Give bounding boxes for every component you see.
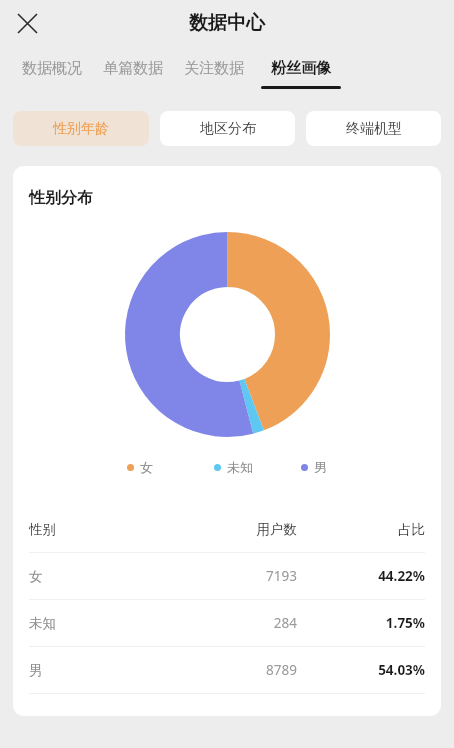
staticText: 粉丝画像 [271, 59, 331, 78]
button[interactable]: 地区分布 [160, 111, 295, 146]
staticText: 关注数据 [184, 59, 244, 78]
staticText: 性别分布 [29, 188, 93, 208]
button[interactable]: 终端机型 [306, 111, 441, 146]
button[interactable]: Close [8, 4, 46, 42]
button[interactable]: 粉丝画像 [261, 46, 341, 89]
staticText: 44.22% [315, 567, 425, 585]
staticText: 男 [314, 459, 327, 475]
staticText: 未知 [29, 615, 163, 632]
staticText: 7193 [163, 567, 297, 585]
staticText: 1.75% [315, 614, 425, 632]
staticText: 54.03% [315, 661, 425, 679]
staticText: 性别年龄 [53, 120, 109, 138]
staticText: 数据概况 [22, 59, 82, 78]
button[interactable]: 数据概况 [22, 46, 82, 86]
staticText: 女 [29, 568, 163, 585]
button[interactable]: 单篇数据 [103, 46, 163, 86]
button[interactable]: 性别年龄 [13, 111, 149, 146]
staticText: 女 [140, 459, 153, 475]
staticText: 性别 [29, 521, 163, 538]
staticText: 终端机型 [346, 120, 402, 138]
staticText: 单篇数据 [103, 59, 163, 78]
staticText: 数据中心 [189, 11, 265, 35]
staticText: 284 [163, 614, 297, 632]
staticText: 男 [29, 662, 163, 679]
staticText: 用户数 [163, 521, 297, 538]
staticText: 地区分布 [200, 120, 256, 138]
button[interactable]: 关注数据 [184, 46, 244, 86]
staticText: 未知 [227, 459, 253, 475]
staticText: 占比 [315, 521, 425, 538]
staticText: 8789 [163, 661, 297, 679]
